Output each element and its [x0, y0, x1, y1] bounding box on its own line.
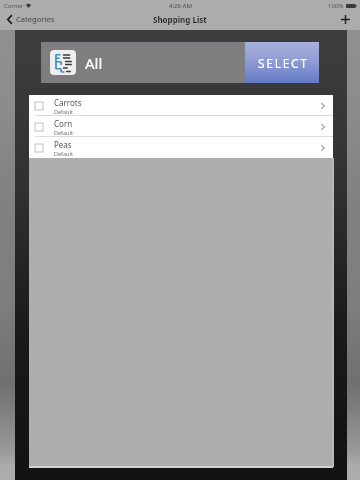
button[interactable]: All — [41, 42, 245, 83]
staticText: Default — [54, 108, 73, 115]
staticText: All — [85, 53, 103, 73]
button[interactable]: Carrots — [29, 95, 333, 116]
staticText: Corn — [54, 118, 73, 129]
staticText: Carrier — [4, 2, 24, 10]
staticText: Shopping List — [153, 14, 207, 25]
staticText: Categories — [16, 14, 55, 24]
staticText: Carrots — [54, 97, 82, 108]
button[interactable]: Peas — [29, 137, 333, 158]
staticText: Default — [54, 129, 73, 136]
staticText: Default — [54, 150, 73, 157]
staticText: SELECT — [258, 55, 309, 71]
staticText: 100% — [328, 2, 344, 10]
staticText: 4:26 AM — [169, 2, 192, 10]
button[interactable]: Add item — [335, 9, 356, 30]
button[interactable]: Corn — [29, 116, 333, 137]
button[interactable]: Categories — [0, 11, 55, 27]
staticText: Peas — [54, 139, 72, 150]
button[interactable]: SELECT — [245, 42, 319, 83]
